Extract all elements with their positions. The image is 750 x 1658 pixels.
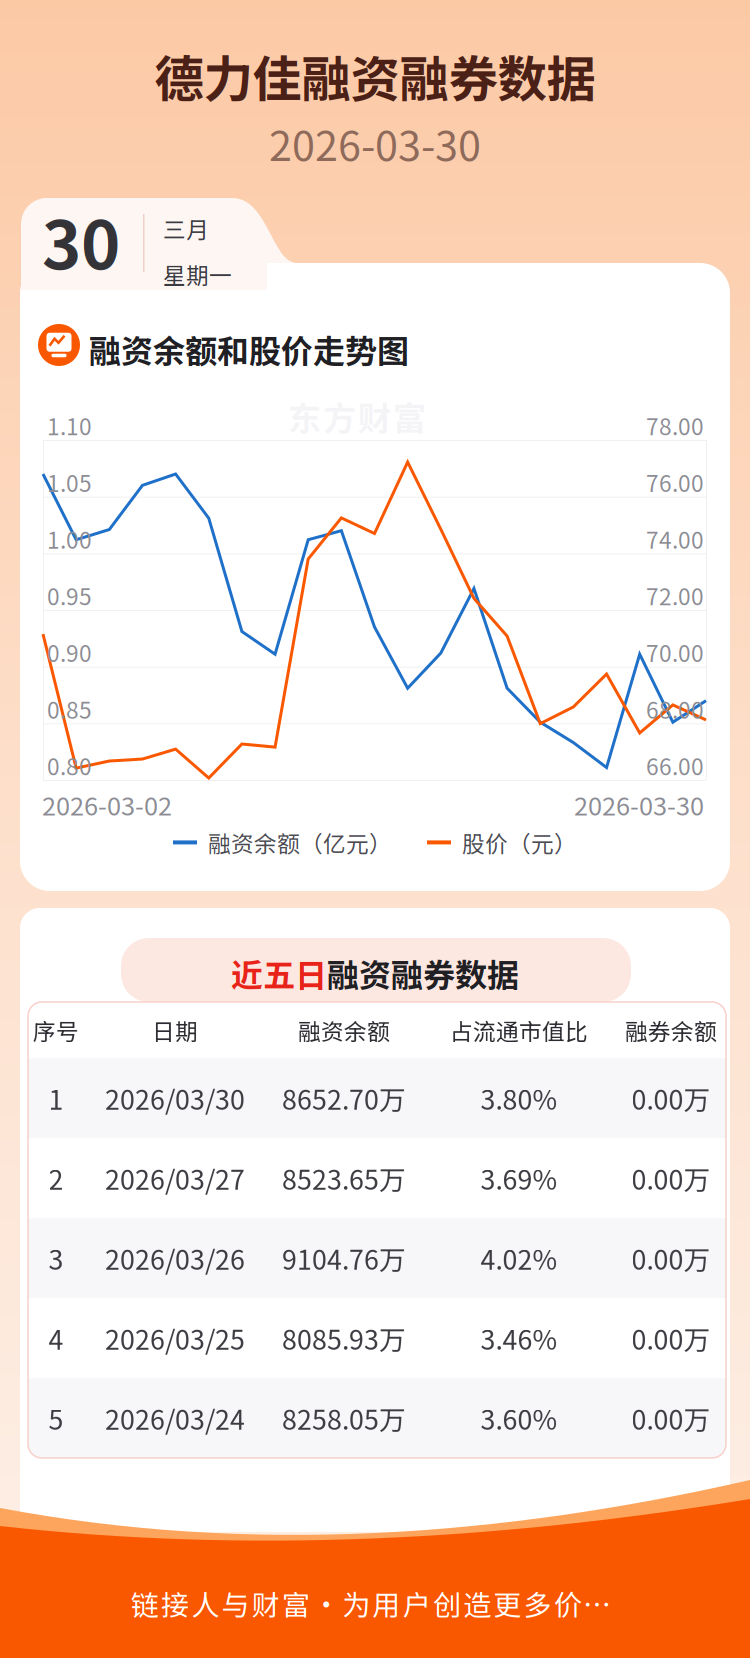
staticText: 4.02% bbox=[480, 1239, 557, 1277]
staticText: 三月 bbox=[163, 212, 209, 245]
staticText: 融资融券数据 bbox=[327, 950, 519, 996]
staticText: 3.60% bbox=[480, 1399, 557, 1437]
staticText: 66.00 bbox=[646, 749, 704, 782]
staticText: 序号 bbox=[33, 1014, 79, 1046]
staticText: 1.05 bbox=[47, 466, 92, 498]
staticText: 8085.93万 bbox=[282, 1319, 406, 1357]
staticText: 2026-03-02 bbox=[42, 786, 172, 823]
staticText: 0.90 bbox=[47, 636, 92, 668]
staticText: 融资余额（亿元） bbox=[208, 826, 392, 859]
staticText: 2 bbox=[48, 1159, 63, 1197]
staticText: 2026/03/26 bbox=[105, 1239, 245, 1277]
staticText: 3.69% bbox=[480, 1159, 557, 1197]
staticText: 0.00万 bbox=[631, 1239, 710, 1277]
staticText: 2026-03-30 bbox=[574, 786, 704, 823]
staticText: 2026/03/24 bbox=[105, 1399, 245, 1437]
staticText: 8652.70万 bbox=[282, 1079, 406, 1117]
staticText: 链接人与财富·为用户创造更多价值 bbox=[131, 1583, 612, 1623]
staticText: 2026/03/30 bbox=[105, 1079, 245, 1117]
staticText: 3 bbox=[48, 1239, 63, 1277]
staticText: 1 bbox=[48, 1079, 63, 1117]
staticText: 融券余额 bbox=[625, 1014, 717, 1046]
staticText: 9104.76万 bbox=[282, 1239, 406, 1277]
staticText: 76.00 bbox=[646, 466, 704, 498]
staticText: 0.00万 bbox=[631, 1079, 710, 1117]
staticText: 78.00 bbox=[646, 409, 704, 442]
staticText: 0.80 bbox=[47, 749, 92, 782]
staticText: 占流通市值比 bbox=[450, 1014, 588, 1046]
staticText: 3.46% bbox=[480, 1319, 557, 1357]
staticText: 1.00 bbox=[47, 522, 92, 555]
staticText: 星期一 bbox=[163, 258, 232, 291]
staticText: 融资余额和股价走势图 bbox=[89, 326, 409, 372]
staticText: 0.85 bbox=[47, 692, 92, 725]
staticText: 日期 bbox=[152, 1014, 198, 1046]
staticText: 0.00万 bbox=[631, 1399, 710, 1437]
staticText: 8258.05万 bbox=[282, 1399, 406, 1437]
staticText: 1.10 bbox=[47, 409, 92, 442]
staticText: 股价（元） bbox=[462, 826, 577, 859]
staticText: 2026/03/25 bbox=[105, 1319, 245, 1357]
staticText: 0.00万 bbox=[631, 1159, 710, 1197]
staticText: 2026/03/27 bbox=[105, 1159, 245, 1197]
staticText: 68.00 bbox=[646, 692, 704, 725]
staticText: 4 bbox=[48, 1319, 63, 1357]
staticText: 72.00 bbox=[646, 579, 704, 612]
staticText: 2026-03-30 bbox=[269, 113, 481, 173]
staticText: 融资余额 bbox=[298, 1014, 390, 1046]
staticText: 8523.65万 bbox=[282, 1159, 406, 1197]
staticText: 30 bbox=[42, 192, 120, 288]
staticText: 0.00万 bbox=[631, 1319, 710, 1357]
staticText: 东方财富 bbox=[288, 392, 426, 440]
staticText: 3.80% bbox=[480, 1079, 557, 1117]
staticText: 5 bbox=[48, 1399, 63, 1437]
staticText: 德力佳融资融券数据 bbox=[154, 40, 595, 111]
staticText: 74.00 bbox=[646, 522, 704, 555]
staticText: 近五日 bbox=[231, 950, 327, 996]
staticText: 70.00 bbox=[646, 636, 704, 668]
staticText: 0.95 bbox=[47, 579, 92, 612]
